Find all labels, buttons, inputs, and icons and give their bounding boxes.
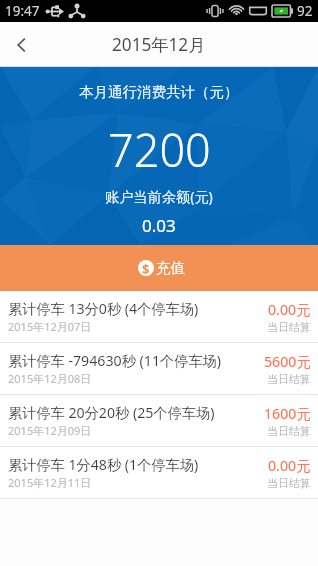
staticText: 当日结算 — [267, 372, 311, 386]
button[interactable]: $ — [0, 245, 318, 291]
staticText: 19:47 — [5, 2, 40, 20]
staticText: 累计停车 1分48秒 (1个停车场) — [8, 455, 199, 474]
staticText: 2015年12月 — [112, 33, 206, 56]
staticText: 7200 — [108, 119, 211, 180]
staticText: 2015年12月11日 — [8, 475, 92, 490]
button[interactable]: Back — [0, 23, 44, 67]
button[interactable]: 累计停车 13分0秒 (4个停车场) — [0, 291, 318, 342]
staticText: 5600元 — [264, 352, 311, 371]
staticText: 0.00元 — [268, 456, 311, 475]
staticText: 1600元 — [264, 404, 311, 423]
button[interactable]: 累计停车 1分48秒 (1个停车场) — [0, 447, 318, 498]
staticText: 本月通行消费共计（元） — [79, 83, 239, 101]
staticText: 92 — [297, 2, 313, 20]
staticText: 账户当前余额(元) — [105, 187, 213, 206]
staticText: 2015年12月08日 — [8, 371, 92, 386]
staticText: 当日结算 — [267, 424, 311, 438]
staticText: 累计停车 -794630秒 (11个停车场) — [8, 351, 222, 370]
staticText: $ — [142, 260, 150, 276]
button[interactable]: 累计停车 -794630秒 (11个停车场) — [0, 343, 318, 394]
staticText: 2015年12月07日 — [8, 319, 92, 334]
button[interactable]: 累计停车 20分20秒 (25个停车场) — [0, 395, 318, 446]
staticText: 充值 — [156, 259, 185, 277]
staticText: 当日结算 — [267, 476, 311, 490]
staticText: 0.03 — [142, 214, 176, 237]
staticText: 2015年12月09日 — [8, 423, 92, 438]
staticText: 0.00元 — [268, 300, 311, 319]
staticText: 累计停车 13分0秒 (4个停车场) — [8, 299, 199, 318]
staticText: 累计停车 20分20秒 (25个停车场) — [8, 403, 215, 422]
staticText: 当日结算 — [267, 320, 311, 334]
